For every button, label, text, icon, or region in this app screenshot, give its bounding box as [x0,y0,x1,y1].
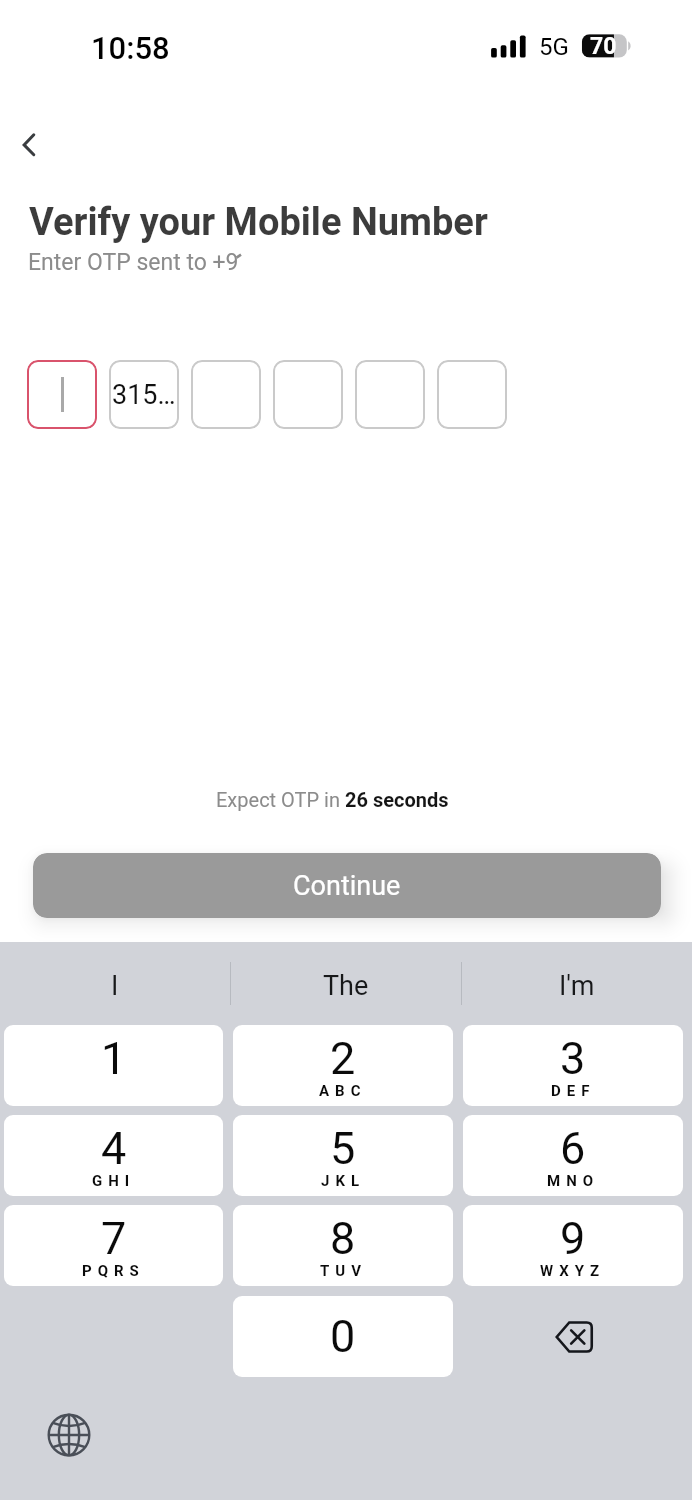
staticText: MNO [547,1172,600,1190]
button[interactable]: 0 [233,1296,453,1377]
button[interactable]: 3 [463,1025,683,1106]
staticText: 2 [330,1032,356,1085]
button[interactable]: Backspace [463,1296,683,1377]
button[interactable] [355,360,425,429]
button[interactable]: 7 [4,1205,223,1286]
button[interactable]: 8 [233,1205,453,1286]
button[interactable]: 9 [463,1205,683,1286]
button[interactable]: Continue [33,853,661,918]
staticText: 3 [560,1032,586,1085]
staticText: The [323,970,369,1002]
button[interactable]: 315… [109,360,179,429]
staticText: JKL [321,1172,366,1190]
staticText: Expect OTP in 26 seconds [216,788,449,811]
staticText: 4 [101,1122,127,1175]
button[interactable] [273,360,343,429]
staticText: 9 [560,1212,586,1265]
staticText: GHI [92,1172,136,1190]
button[interactable]: 6 [463,1115,683,1196]
staticText: PQRS [82,1262,145,1280]
button[interactable]: I [0,962,230,1005]
button[interactable]: The [231,962,461,1005]
staticText: 10:58 [91,30,170,66]
staticText: 70 [590,33,617,60]
button[interactable] [437,360,507,429]
button[interactable] [27,360,97,429]
button[interactable]: Change keyboard language [47,1413,91,1457]
staticText: 8 [330,1212,356,1265]
staticText: Verify your Mobile Number [29,200,488,245]
staticText: 7 [101,1212,127,1265]
staticText: 0 [330,1310,356,1363]
staticText: I'm [559,970,595,1002]
button[interactable] [191,360,261,429]
staticText: I [111,970,119,1002]
staticText: Enter OTP sent to +9 [28,249,239,276]
button[interactable]: 1 [4,1025,223,1106]
staticText: 1 [101,1032,127,1085]
button[interactable]: 2 [233,1025,453,1106]
staticText: TUV [320,1262,367,1280]
staticText: 5 [330,1122,356,1175]
staticText: 5G [539,33,569,61]
button[interactable]: Back [4,121,52,169]
staticText: 315… [112,379,176,411]
staticText: 6 [560,1122,586,1175]
button[interactable]: I'm [462,962,692,1005]
button[interactable]: 5 [233,1115,453,1196]
staticText: DEF [551,1082,596,1100]
staticText: ABC [319,1082,367,1100]
staticText: WXYZ [540,1262,606,1280]
button[interactable]: 4 [4,1115,223,1196]
staticText: Continue [293,870,401,902]
